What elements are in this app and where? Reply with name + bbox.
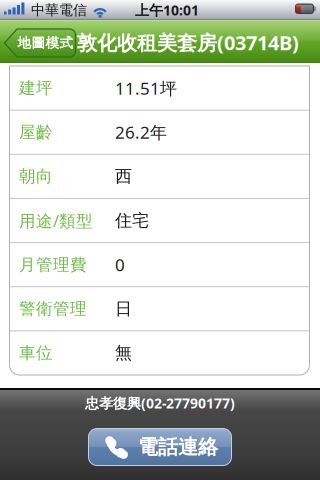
staticText: 0 — [115, 253, 125, 276]
staticText: 26.2年 — [115, 121, 167, 144]
staticText: 日 — [115, 298, 132, 319]
staticText: 朝向 — [19, 166, 53, 187]
staticText: 西 — [115, 166, 132, 187]
staticText: 用途/類型 — [19, 209, 93, 232]
button[interactable]: 地圖模式 — [3, 28, 76, 58]
staticText: 建坪 — [19, 78, 53, 98]
staticText: 地圖模式 — [17, 34, 73, 51]
button[interactable]: 電話連絡 — [88, 428, 232, 466]
staticText: 上午10:01 — [135, 0, 199, 20]
staticText: 車位 — [19, 342, 53, 363]
staticText: 中華電信 — [31, 1, 87, 19]
staticText: 電話連絡 — [138, 434, 218, 460]
staticText: 無 — [115, 342, 132, 364]
staticText: 敦化收租美套房(03714B) — [77, 29, 299, 56]
staticText: 屋齡 — [19, 122, 53, 143]
staticText: 11.51坪 — [115, 76, 177, 100]
staticText: 月管理費 — [19, 254, 87, 275]
staticText: 警衛管理 — [19, 298, 87, 319]
staticText: 住宅 — [115, 210, 149, 231]
staticText: 忠孝復興(02-27790177) — [85, 393, 235, 413]
